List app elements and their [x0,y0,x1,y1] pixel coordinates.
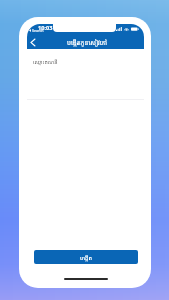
staticText: បង្កើត [80,254,93,261]
button[interactable]: Back [27,35,40,49]
staticText: Search [32,28,44,33]
staticText: បង្កើតកូនសៀវភៅ [67,38,108,46]
button[interactable]: បង្កើត [34,250,138,264]
staticText: ឈ្មោះគណនី [33,58,58,65]
staticText: 10:03 [38,24,53,32]
